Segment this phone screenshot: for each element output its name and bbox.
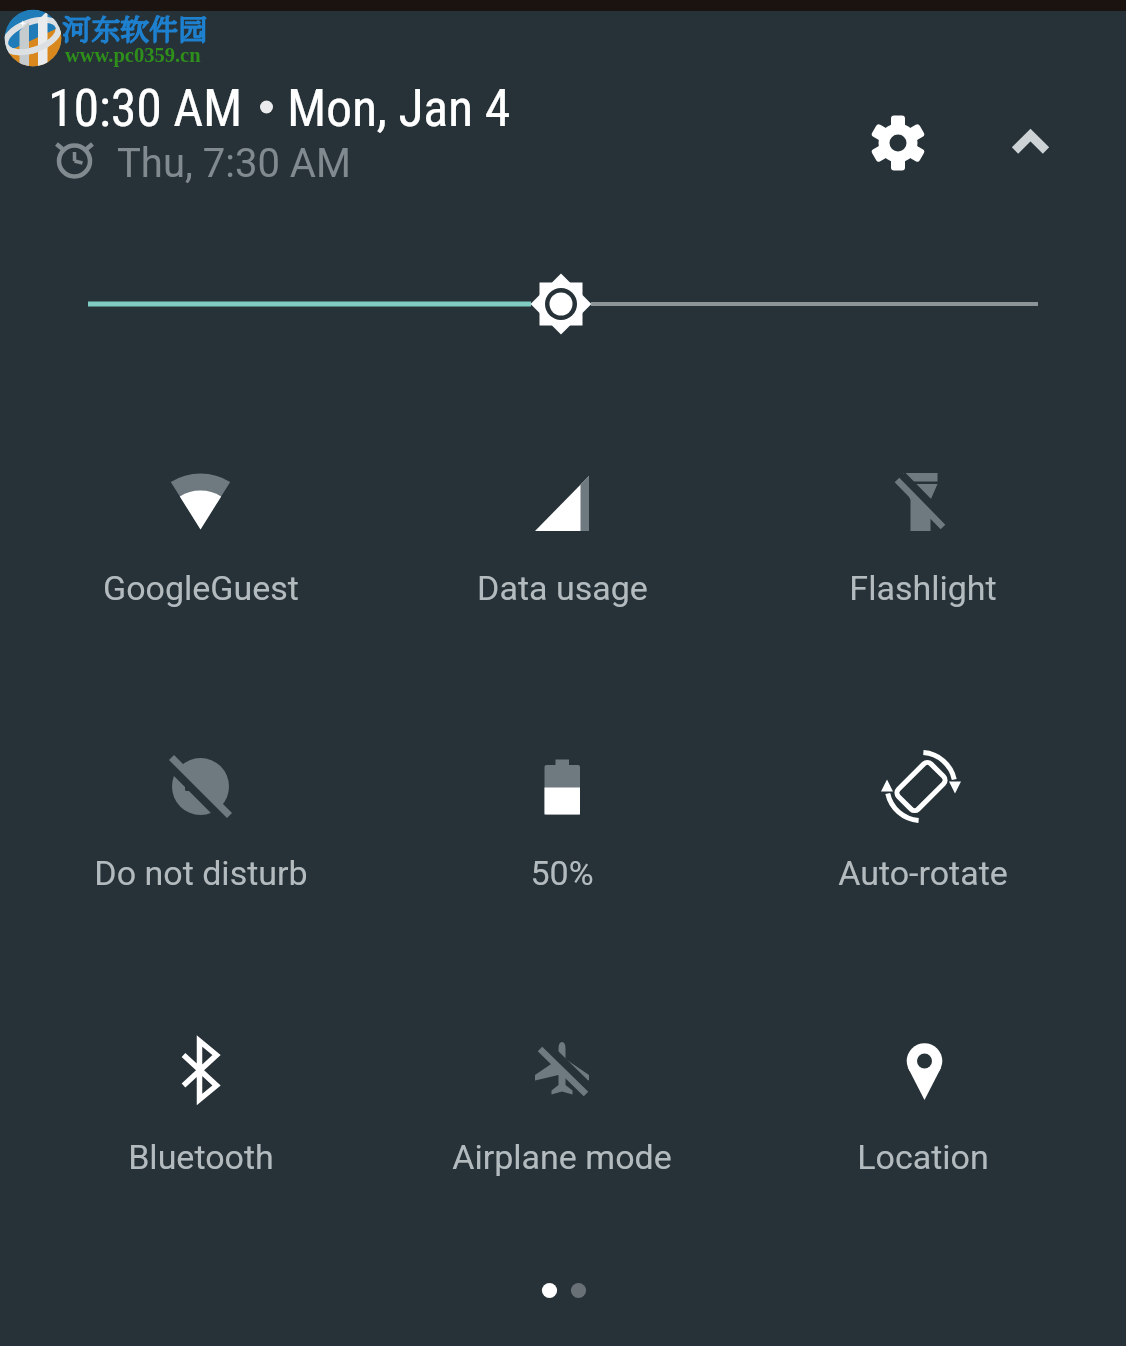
button[interactable] — [20, 993, 381, 1213]
button[interactable] — [20, 710, 381, 930]
staticText: 河东软件园 — [62, 8, 208, 50]
button[interactable] — [381, 993, 742, 1213]
button[interactable] — [60, 272, 1066, 336]
staticText: Flashlight — [849, 568, 997, 608]
staticText: Do not disturb — [94, 853, 308, 893]
staticText: www.pc0359.cn — [65, 44, 201, 67]
staticText: Location — [857, 1137, 989, 1177]
button[interactable] — [742, 425, 1103, 645]
staticText: GoogleGuest — [103, 568, 299, 608]
staticText: Auto-rotate — [838, 853, 1008, 893]
staticText: Airplane mode — [452, 1137, 672, 1177]
button[interactable] — [20, 425, 381, 645]
button[interactable] — [381, 710, 742, 930]
staticText: Mon, Jan 4 — [287, 78, 511, 139]
button[interactable] — [742, 710, 1103, 930]
button[interactable] — [1002, 123, 1058, 163]
button[interactable] — [872, 117, 924, 169]
staticText: Thu, 7:30 AM — [117, 140, 351, 184]
button[interactable] — [381, 425, 742, 645]
staticText: Bluetooth — [128, 1137, 274, 1177]
staticText: 10:30 AM — [48, 78, 243, 139]
staticText: 河东软件园 — [63, 7, 209, 49]
staticText: 50% — [530, 853, 594, 893]
staticText: Data usage — [477, 568, 648, 608]
staticText: 河东软件园 — [62, 7, 208, 49]
button[interactable] — [742, 993, 1103, 1213]
